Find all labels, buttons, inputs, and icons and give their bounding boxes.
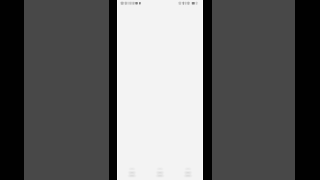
other: Status bar bbox=[117, 0, 203, 8]
button[interactable]: Profile bbox=[175, 158, 201, 180]
button[interactable]: Home bbox=[119, 158, 145, 180]
button[interactable]: Search bbox=[147, 158, 173, 180]
